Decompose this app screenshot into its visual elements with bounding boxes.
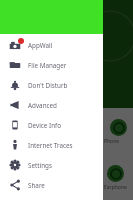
- button[interactable]: Earphone: [0, 155, 133, 200]
- staticText: File Manager: [28, 61, 67, 70]
- button[interactable]: Settings: [0, 155, 103, 175]
- button[interactable]: Phone Cooler: [0, 108, 133, 155]
- staticText: Internet Traces: [28, 141, 73, 150]
- button[interactable]: AppWall: [0, 35, 103, 55]
- button[interactable]: File Manager: [0, 55, 103, 75]
- staticText: Advanced: [28, 101, 57, 110]
- staticText: Don't Disturb: [28, 81, 68, 90]
- staticText: Share: [28, 181, 45, 190]
- button[interactable]: Don't Disturb: [0, 75, 103, 95]
- button[interactable]: Internet Traces: [0, 135, 103, 155]
- staticText: Device Info: [28, 121, 62, 130]
- staticText: Earphone: [104, 184, 127, 191]
- staticText: AppWall: [28, 41, 53, 50]
- button[interactable]: Share: [0, 175, 103, 195]
- button[interactable]: Advanced: [0, 95, 103, 115]
- staticText: Settings: [28, 161, 52, 170]
- button[interactable]: Device Info: [0, 115, 103, 135]
- staticText: Phone Cooler: [104, 138, 133, 145]
